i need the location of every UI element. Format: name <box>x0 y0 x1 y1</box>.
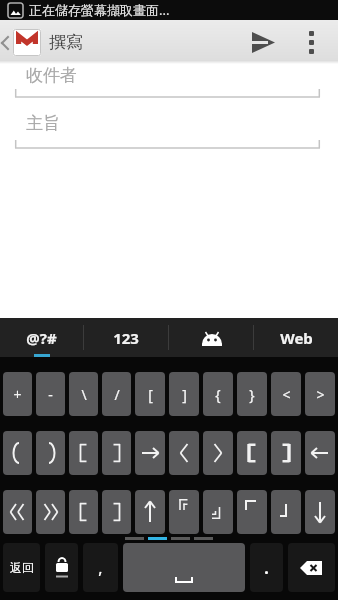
button[interactable]: > <box>305 372 335 416</box>
button[interactable] <box>45 543 78 592</box>
button[interactable] <box>3 431 32 475</box>
button[interactable]: [ <box>135 372 165 416</box>
button[interactable] <box>169 431 199 475</box>
button[interactable] <box>36 431 65 475</box>
button[interactable] <box>203 490 233 534</box>
button[interactable]: < <box>271 372 301 416</box>
button[interactable]: \ <box>69 372 98 416</box>
button[interactable] <box>237 431 267 475</box>
button[interactable] <box>69 490 98 534</box>
button[interactable] <box>237 490 267 534</box>
staticText: + <box>13 385 22 404</box>
staticText: 撰寫 <box>49 32 83 53</box>
button[interactable]: / <box>102 372 131 416</box>
staticText: } <box>249 385 255 404</box>
button[interactable]: Web <box>254 318 338 357</box>
button[interactable] <box>123 543 245 592</box>
button[interactable] <box>135 431 165 475</box>
button[interactable] <box>305 490 335 534</box>
button[interactable] <box>271 490 301 534</box>
button[interactable]: ] <box>169 372 199 416</box>
button[interactable] <box>271 431 301 475</box>
button[interactable]: . <box>250 543 283 592</box>
button[interactable] <box>288 543 335 592</box>
staticText: 123 <box>113 328 139 348</box>
button[interactable]: 123 <box>84 318 168 357</box>
button[interactable] <box>135 490 165 534</box>
button[interactable]: 主旨 <box>15 102 320 148</box>
button[interactable] <box>3 490 32 534</box>
button[interactable] <box>289 25 333 60</box>
button[interactable]: @?# <box>0 318 83 357</box>
staticText: 返回 <box>10 560 34 575</box>
button[interactable]: { <box>203 372 233 416</box>
button[interactable] <box>36 490 65 534</box>
staticText: 主旨 <box>26 113 60 134</box>
staticText: < <box>282 385 291 404</box>
button[interactable] <box>69 431 98 475</box>
staticText: 正在儲存螢幕擷取畫面... <box>29 1 170 19</box>
button[interactable] <box>169 318 253 357</box>
staticText: > <box>316 385 325 404</box>
button[interactable] <box>102 431 131 475</box>
staticText: { <box>215 385 221 404</box>
button[interactable] <box>305 431 335 475</box>
button[interactable] <box>102 490 131 534</box>
staticText: @?# <box>26 328 57 348</box>
staticText: / <box>114 385 120 404</box>
button[interactable]: - <box>36 372 65 416</box>
staticText: [ <box>148 385 153 404</box>
button[interactable]: 撰寫 <box>0 25 83 60</box>
button[interactable]: , <box>83 543 118 592</box>
button[interactable]: + <box>3 372 32 416</box>
staticText: , <box>98 557 103 579</box>
button[interactable]: 返回 <box>3 543 40 592</box>
staticText: 收件者 <box>26 65 77 86</box>
button[interactable] <box>169 490 199 534</box>
button[interactable] <box>203 431 233 475</box>
button[interactable] <box>237 25 289 60</box>
staticText: \ <box>81 385 87 404</box>
staticText: - <box>48 385 53 404</box>
button[interactable]: 收件者 <box>15 60 320 97</box>
staticText: Web <box>280 328 313 348</box>
staticText: . <box>264 557 269 579</box>
staticText: ] <box>182 385 187 404</box>
button[interactable]: } <box>237 372 267 416</box>
